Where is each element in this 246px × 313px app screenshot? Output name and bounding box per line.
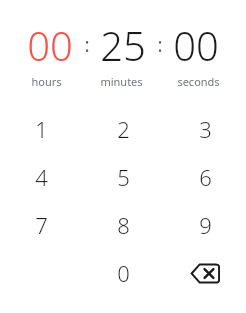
button[interactable]: 9	[181, 201, 229, 249]
button[interactable]: 6	[181, 153, 229, 201]
staticText: :	[157, 32, 163, 58]
button[interactable]: 00	[17, 18, 83, 72]
staticText: 1	[35, 114, 48, 144]
staticText: seconds	[177, 74, 220, 89]
staticText: hours	[31, 74, 62, 89]
staticText: 6	[199, 162, 212, 192]
button[interactable]: Backspace	[181, 249, 229, 297]
staticText: 00	[27, 18, 73, 72]
button[interactable]: 3	[181, 105, 229, 153]
button[interactable]: 00	[163, 18, 229, 72]
staticText: 4	[35, 162, 48, 192]
button[interactable]: 2	[99, 105, 147, 153]
button[interactable]: 4	[17, 153, 65, 201]
staticText: 3	[199, 114, 212, 144]
button[interactable]: 7	[17, 201, 65, 249]
staticText: 5	[117, 162, 130, 192]
staticText: 8	[117, 210, 130, 240]
button[interactable]: 0	[99, 249, 147, 297]
button[interactable]: 5	[99, 153, 147, 201]
staticText: :	[84, 32, 90, 58]
staticText: 0	[117, 258, 130, 288]
staticText: 9	[199, 210, 212, 240]
button[interactable]: 1	[17, 105, 65, 153]
button[interactable]: 25	[90, 18, 156, 72]
staticText: 25	[100, 18, 146, 72]
button[interactable]: 8	[99, 201, 147, 249]
staticText: 2	[117, 114, 130, 144]
staticText: minutes	[100, 74, 143, 89]
staticText: 00	[173, 18, 219, 72]
staticText: 7	[35, 210, 48, 240]
